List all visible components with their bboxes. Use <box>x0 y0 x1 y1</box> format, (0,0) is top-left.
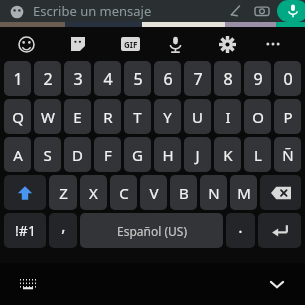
staticText: 0 <box>283 68 293 90</box>
button[interactable]: Settings <box>213 27 241 61</box>
button[interactable]: 4 <box>94 61 121 96</box>
button[interactable]: Camera <box>253 2 271 20</box>
staticText: K <box>223 145 233 165</box>
staticText: D <box>72 145 83 165</box>
staticText: Ñ <box>282 145 294 165</box>
staticText: I <box>225 107 231 127</box>
staticText: 3 <box>73 68 83 90</box>
button[interactable]: 5 <box>124 61 151 96</box>
staticText: A <box>13 145 23 165</box>
staticText: G <box>132 145 143 165</box>
button[interactable]: R <box>94 99 121 134</box>
button[interactable]: Z <box>49 175 77 210</box>
button[interactable]: S <box>34 137 61 172</box>
button[interactable]: 0 <box>274 61 301 96</box>
button[interactable]: Emoji keyboard <box>12 27 40 61</box>
staticText: R <box>103 107 113 127</box>
staticText: O <box>252 107 264 127</box>
staticText: H <box>162 145 174 165</box>
button[interactable]: Emoji <box>8 3 25 20</box>
button[interactable]: J <box>184 137 211 172</box>
button[interactable]: 7 <box>184 61 211 96</box>
button[interactable]: U <box>184 99 211 134</box>
staticText: T <box>133 107 142 127</box>
staticText: J <box>195 145 200 165</box>
staticText: Español (US) <box>117 223 187 239</box>
button[interactable]: H <box>154 137 181 172</box>
button[interactable]: , <box>49 213 77 248</box>
button[interactable]: Record voice message <box>277 0 305 22</box>
button[interactable]: O <box>244 99 271 134</box>
staticText: !#1 <box>15 221 36 240</box>
button[interactable]: 3 <box>64 61 91 96</box>
button[interactable]: 2 <box>34 61 61 96</box>
button[interactable]: . <box>226 213 255 248</box>
button[interactable]: L <box>244 137 271 172</box>
staticText: Q <box>12 107 24 127</box>
staticText: Y <box>163 107 172 127</box>
button[interactable]: E <box>64 99 91 134</box>
staticText: V <box>149 183 159 203</box>
button[interactable]: 8 <box>214 61 241 96</box>
staticText: X <box>89 183 98 203</box>
staticText: E <box>73 107 82 127</box>
staticText: . <box>238 216 243 238</box>
staticText: 6 <box>163 68 173 90</box>
button[interactable]: Backspace <box>260 175 301 210</box>
button[interactable]: Attach file <box>226 2 244 20</box>
staticText: B <box>179 183 189 203</box>
button[interactable]: G <box>124 137 151 172</box>
button[interactable]: 6 <box>154 61 181 96</box>
button[interactable]: B <box>170 175 197 210</box>
staticText: GIF <box>124 39 138 50</box>
staticText: 5 <box>133 68 143 90</box>
staticText: 8 <box>223 68 233 90</box>
staticText: 2 <box>43 68 53 90</box>
button[interactable]: Hide keyboard <box>264 271 290 297</box>
staticText: 7 <box>193 68 203 90</box>
button[interactable]: 9 <box>244 61 271 96</box>
button[interactable]: C <box>110 175 137 210</box>
button[interactable]: Ñ <box>274 137 301 172</box>
button[interactable]: I <box>214 99 241 134</box>
button[interactable]: 1 <box>4 61 31 96</box>
button[interactable]: Stickers <box>64 27 92 61</box>
button[interactable]: A <box>4 137 31 172</box>
staticText: S <box>43 145 52 165</box>
button[interactable]: Shift <box>4 175 46 210</box>
staticText: 9 <box>253 68 263 90</box>
button[interactable]: X <box>80 175 107 210</box>
button[interactable]: W <box>34 99 61 134</box>
staticText: 4 <box>103 68 113 90</box>
button[interactable]: F <box>94 137 121 172</box>
staticText: Z <box>59 183 68 203</box>
staticText: U <box>192 107 203 127</box>
button[interactable]: D <box>64 137 91 172</box>
button[interactable]: GIF <box>116 27 144 61</box>
staticText: N <box>208 183 220 203</box>
button[interactable]: Enter <box>258 213 301 248</box>
button[interactable]: M <box>230 175 257 210</box>
button[interactable]: P <box>274 99 301 134</box>
staticText: F <box>104 145 112 165</box>
staticText: L <box>254 145 262 165</box>
button[interactable]: Español (US) <box>80 213 223 248</box>
button[interactable]: Q <box>4 99 31 134</box>
button[interactable]: Y <box>154 99 181 134</box>
staticText: C <box>119 183 129 203</box>
button[interactable]: N <box>200 175 227 210</box>
staticText: , <box>61 215 66 237</box>
button[interactable]: !#1 <box>4 213 46 248</box>
button[interactable]: V <box>140 175 167 210</box>
staticText: P <box>283 107 293 127</box>
staticText: Escribe un mensaje <box>33 2 152 20</box>
button[interactable]: K <box>214 137 241 172</box>
button[interactable]: Voice input <box>161 27 189 61</box>
button[interactable]: T <box>124 99 151 134</box>
staticText: W <box>41 107 55 127</box>
button[interactable]: Switch keyboard <box>15 271 41 297</box>
staticText: M <box>237 183 251 203</box>
staticText: 1 <box>13 68 23 90</box>
button[interactable]: More options <box>259 27 287 61</box>
